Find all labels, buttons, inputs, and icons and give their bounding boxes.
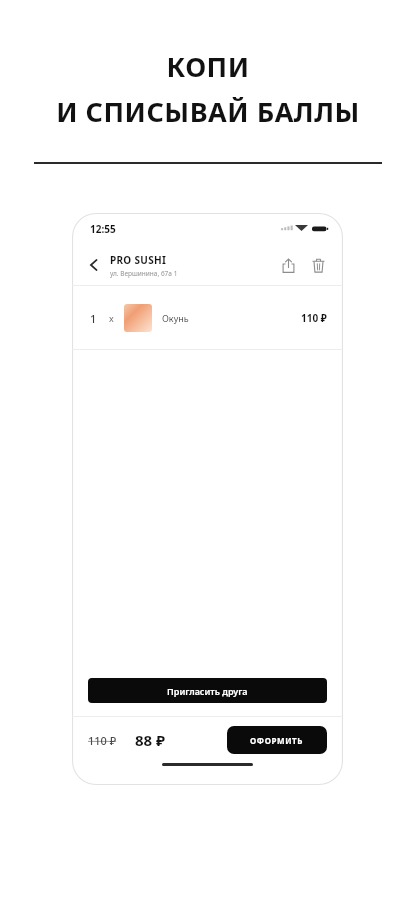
staticText: ул. Вершинина, 67а 1	[110, 269, 178, 278]
staticText: 1	[90, 311, 97, 326]
staticText: КОПИ	[166, 48, 250, 85]
button[interactable]: Back	[84, 255, 104, 275]
staticText: x	[109, 312, 114, 324]
staticText: PRO SUSHI	[110, 253, 167, 267]
staticText: Пригласить друга	[167, 685, 248, 697]
staticText: 12:55	[90, 222, 116, 236]
button[interactable]: 1	[72, 287, 343, 349]
staticText: Окунь	[162, 312, 189, 324]
staticText: 88 ₽	[135, 730, 166, 750]
staticText: И СПИСЫВАЙ БАЛЛЫ	[56, 93, 360, 130]
staticText: 110 ₽	[301, 311, 327, 325]
button[interactable]: Delete	[307, 254, 329, 276]
staticText: 110 ₽	[88, 733, 117, 748]
button[interactable]: ОФОРМИТЬ	[227, 726, 327, 754]
button[interactable]: Share	[277, 254, 299, 276]
button[interactable]: Пригласить друга	[88, 678, 327, 703]
staticText: ОФОРМИТЬ	[250, 735, 304, 746]
